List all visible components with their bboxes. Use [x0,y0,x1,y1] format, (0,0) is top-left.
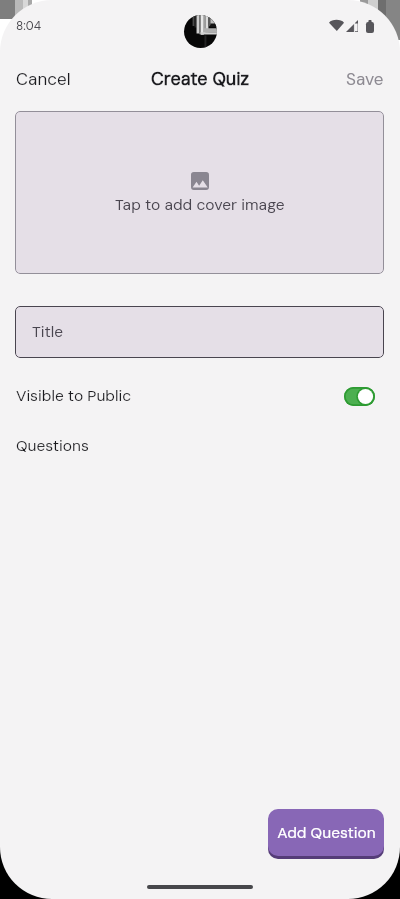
staticText: Create Quiz [151,67,250,90]
button[interactable]: Title [15,306,384,358]
staticText: Visible to Public [16,386,132,406]
staticText: Add Question [277,823,376,843]
staticText: Title [32,322,64,342]
button[interactable]: Cancel [0,63,87,93]
staticText: Cancel [16,68,71,88]
staticText: Questions [16,436,89,456]
staticText: 8:04 [16,18,42,34]
staticText: Save [346,68,384,88]
button[interactable]: Tap to add cover image [15,111,384,274]
button[interactable]: Visible to Public [344,387,375,406]
staticText: Tap to add cover image [115,195,285,215]
button[interactable]: Add Question [268,809,384,856]
button[interactable]: Save [330,63,400,93]
